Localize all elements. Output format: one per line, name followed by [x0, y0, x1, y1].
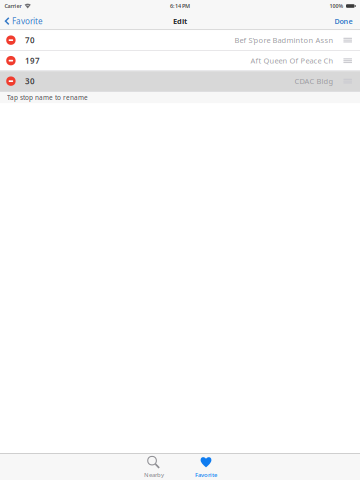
- staticText: 30: [25, 76, 35, 86]
- button[interactable]: Delete stop 197: [0, 51, 25, 71]
- button[interactable]: Favorite: [0, 12, 47, 30]
- staticText: Carrier: [4, 2, 21, 10]
- staticText: 197: [25, 55, 40, 66]
- staticText: Favorite: [195, 471, 217, 479]
- button[interactable]: Nearby: [128, 453, 180, 480]
- staticText: 6:14 PM: [170, 2, 190, 10]
- staticText: Bef S'pore Badminton Assn: [234, 35, 333, 45]
- button[interactable]: Delete stop 70: [0, 30, 25, 50]
- button[interactable]: Reorder stop 197: [333, 51, 360, 71]
- staticText: Edit: [173, 16, 187, 26]
- button[interactable]: 70: [0, 30, 360, 51]
- staticText: Aft Queen Of Peace Ch: [250, 56, 333, 66]
- button[interactable]: 30: [0, 71, 360, 92]
- staticText: Favorite: [12, 16, 43, 26]
- staticText: Nearby: [144, 471, 164, 479]
- staticText: 70: [25, 35, 35, 45]
- button[interactable]: Delete stop 30: [0, 71, 25, 91]
- button[interactable]: Done: [328, 12, 360, 30]
- button[interactable]: Favorite: [180, 453, 232, 480]
- staticText: Tap stop name to rename: [7, 93, 88, 102]
- staticText: Done: [334, 16, 352, 26]
- staticText: CDAC Bldg: [294, 76, 333, 86]
- button[interactable]: 197: [0, 51, 360, 71]
- button[interactable]: Reorder stop 70: [333, 30, 360, 50]
- staticText: 100%: [330, 2, 344, 10]
